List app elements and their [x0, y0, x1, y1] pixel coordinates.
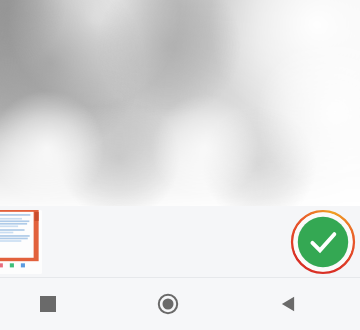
- button[interactable]: Document preview: [0, 210, 42, 274]
- button[interactable]: Confirm: [291, 210, 355, 274]
- button[interactable]: Recent apps: [0, 278, 120, 330]
- button[interactable]: Home: [120, 278, 240, 330]
- button[interactable]: Back: [240, 278, 360, 330]
